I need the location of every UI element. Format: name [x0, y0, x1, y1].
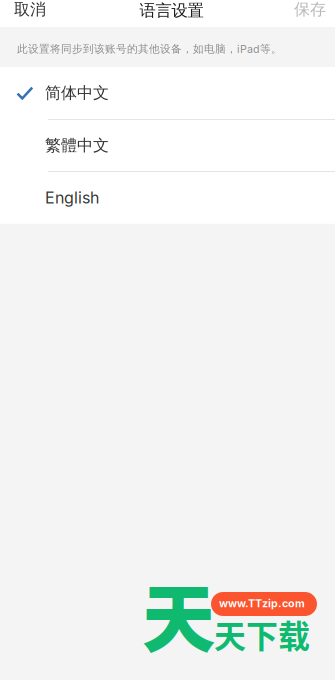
- staticText: 繁體中文: [45, 135, 109, 156]
- button[interactable]: 简体中文: [0, 67, 335, 119]
- button[interactable]: 取消: [14, 0, 46, 20]
- button[interactable]: 繁體中文: [0, 120, 335, 171]
- staticText: 保存: [294, 0, 326, 20]
- staticText: 取消: [14, 0, 46, 20]
- staticText: 简体中文: [45, 83, 109, 103]
- staticText: 语言设置: [139, 0, 203, 21]
- button[interactable]: English: [0, 172, 335, 223]
- staticText: 天: [142, 561, 215, 667]
- staticText: 此设置将同步到该账号的其他设备，如电脑，iPad等。: [17, 42, 282, 56]
- staticText: www.TTzip.com: [219, 597, 305, 610]
- staticText: English: [45, 188, 99, 207]
- staticText: 天下载: [214, 611, 310, 657]
- button[interactable]: 保存: [294, 0, 326, 20]
